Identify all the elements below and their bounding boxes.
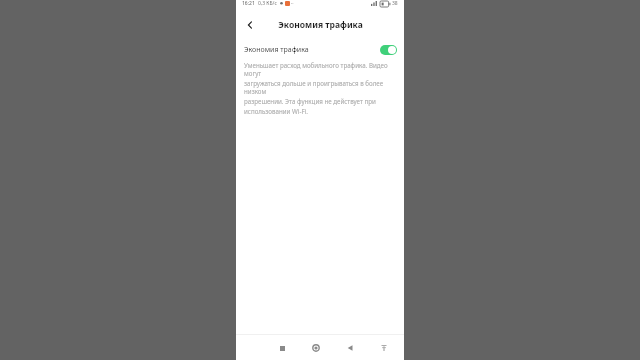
staticText: Экономия трафика — [244, 45, 380, 55]
button[interactable]: Recents — [274, 340, 290, 356]
button[interactable]: Data saver toggle, on — [380, 45, 397, 55]
button[interactable]: Home — [308, 340, 324, 356]
staticText: ·· — [291, 0, 294, 7]
staticText: 16:21 — [242, 0, 255, 7]
button[interactable]: Back — [241, 16, 259, 34]
staticText: разрешении. Эта функция не действует при — [244, 97, 376, 105]
button[interactable]: Back — [342, 340, 358, 356]
button[interactable]: Hide keyboard — [376, 340, 392, 356]
staticText: загружаться дольше и проигрываться в бол… — [244, 79, 396, 95]
staticText: 0,3 КБ/с — [258, 0, 277, 7]
staticText: Экономия трафика — [278, 19, 363, 31]
button[interactable]: Экономия трафика — [236, 41, 404, 59]
staticText: 38 — [392, 0, 398, 7]
staticText: Уменьшает расход мобильного трафика. Вид… — [244, 61, 396, 77]
staticText: использовании Wi-Fi. — [244, 107, 308, 115]
